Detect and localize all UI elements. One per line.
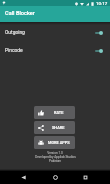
staticText: Pakistan (49, 159, 61, 163)
staticText: 10:17 (96, 1, 108, 6)
staticText: Call Blocker (5, 10, 35, 17)
staticText: Version 1.0 (47, 151, 63, 155)
staticText: Pincode (5, 47, 23, 53)
button[interactable]: Home (49, 171, 62, 184)
staticText: Outgoing (5, 29, 25, 35)
button[interactable]: RATE (34, 106, 75, 119)
button[interactable]: Back (18, 171, 31, 184)
button[interactable]: Outgoing (0, 23, 110, 41)
staticText: SHARE (52, 125, 65, 130)
staticText: MORE APPS (48, 140, 70, 145)
button[interactable]: Pincode (0, 41, 110, 59)
button[interactable]: Recent apps (79, 171, 92, 184)
button[interactable]: SHARE (34, 121, 75, 134)
staticText: Developed by Appilab Studios (35, 155, 76, 159)
staticText: RATE (54, 110, 64, 115)
button[interactable]: MORE APPS (34, 136, 75, 149)
